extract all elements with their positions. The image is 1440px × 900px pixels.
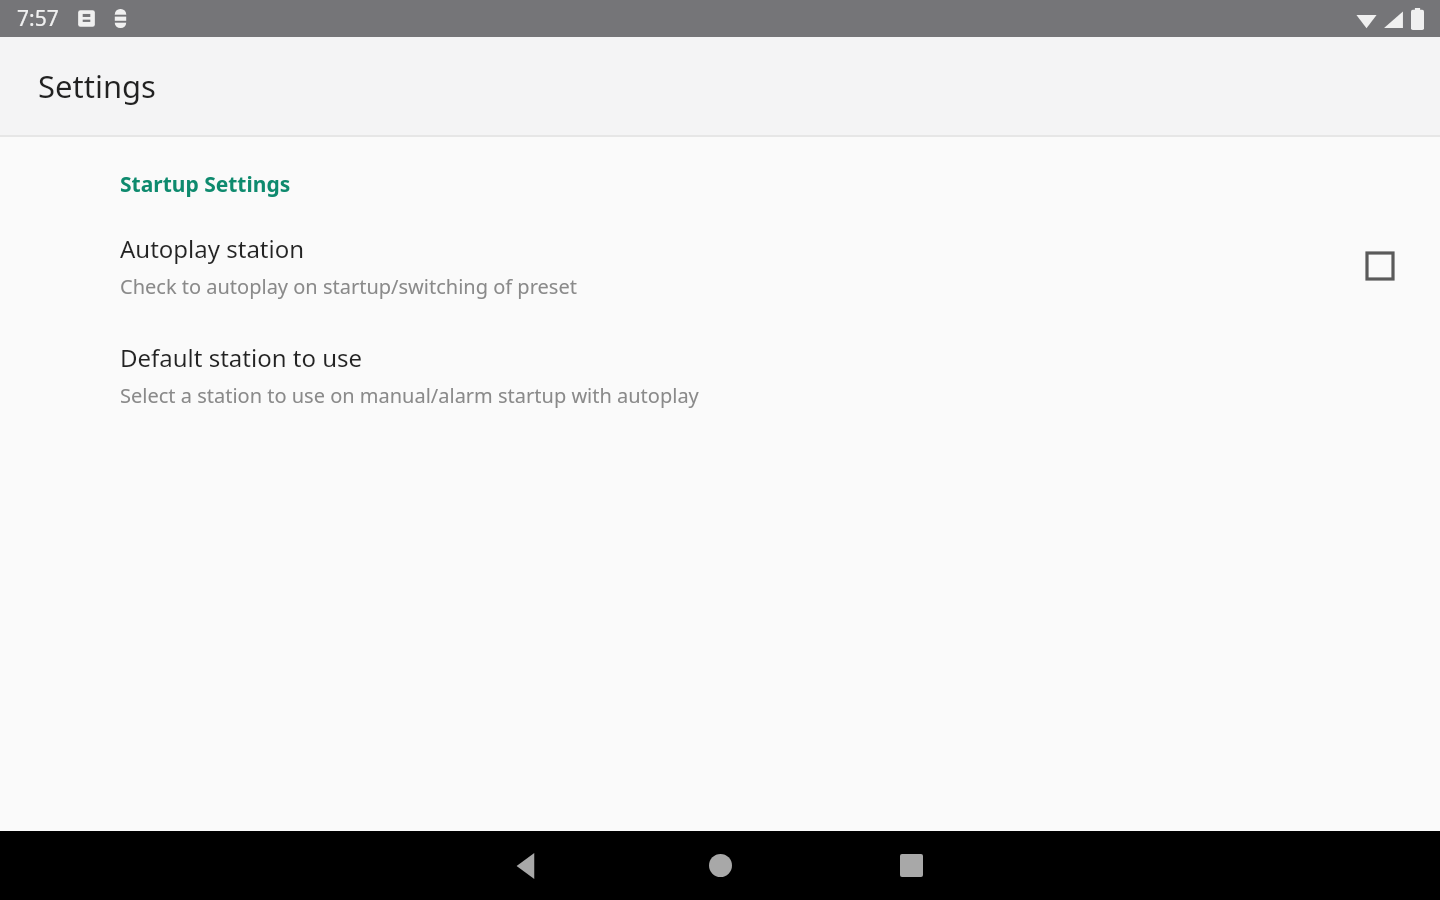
button[interactable]: Recent apps: [863, 831, 959, 900]
button[interactable]: Default station to use: [0, 339, 1440, 411]
button[interactable]: Back: [479, 831, 575, 900]
staticText: Default station to use: [120, 341, 363, 374]
staticText: Check to autoplay on startup/switching o…: [120, 273, 577, 300]
button[interactable]: Home: [672, 831, 768, 900]
staticText: Autoplay station: [120, 232, 305, 265]
staticText: Startup Settings: [120, 170, 291, 199]
button[interactable]: Autoplay station: [0, 230, 1440, 302]
staticText: 7:57: [17, 4, 59, 33]
staticText: Settings: [38, 65, 156, 107]
button[interactable]: Autoplay station checkbox: [1356, 242, 1404, 290]
staticText: Select a station to use on manual/alarm …: [120, 382, 699, 409]
